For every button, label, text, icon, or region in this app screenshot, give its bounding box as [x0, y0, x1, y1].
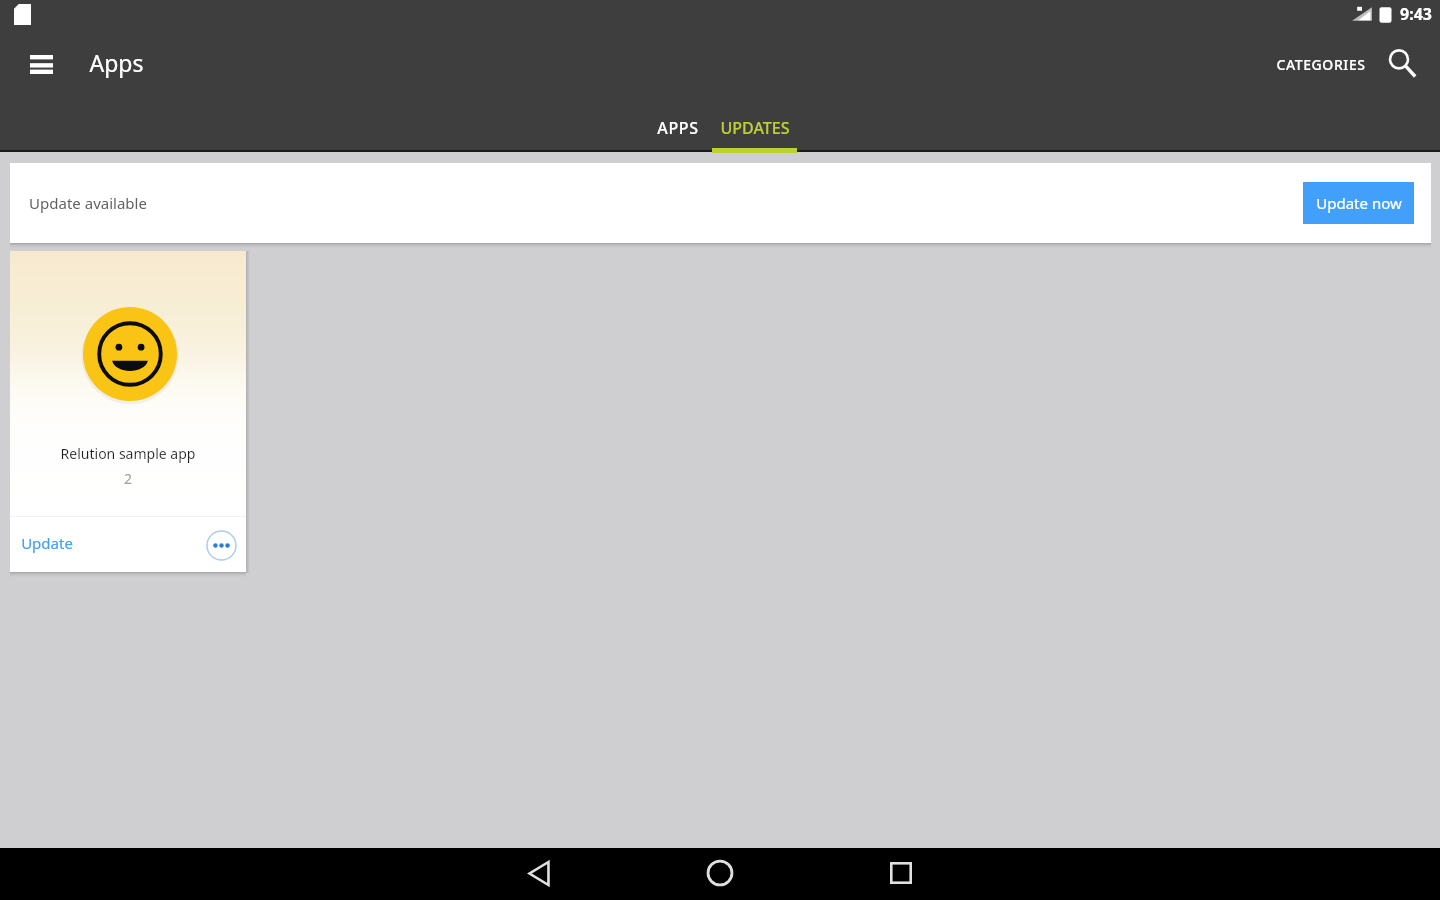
button[interactable]: Relution sample app: [10, 251, 246, 572]
button[interactable]: CATEGORIES: [1264, 42, 1378, 86]
staticText: UPDATES: [720, 117, 790, 139]
button[interactable]: APPS: [636, 106, 720, 150]
button[interactable]: More options: [201, 525, 241, 565]
button[interactable]: Home: [694, 847, 746, 899]
staticText: Update: [21, 533, 73, 553]
button[interactable]: UPDATES: [712, 106, 797, 150]
staticText: APPS: [657, 117, 699, 139]
button[interactable]: Search: [1378, 39, 1426, 87]
staticText: Relution sample app: [10, 444, 246, 463]
button[interactable]: Recent apps: [875, 847, 927, 899]
button[interactable]: Open navigation drawer: [17, 40, 65, 88]
staticText: Update available: [29, 193, 147, 213]
staticText: Apps: [89, 47, 144, 78]
button[interactable]: Update: [10, 525, 84, 561]
button[interactable]: Update now: [1303, 182, 1414, 224]
staticText: CATEGORIES: [1276, 55, 1366, 74]
button[interactable]: Back: [513, 847, 565, 899]
staticText: 2: [10, 469, 246, 488]
staticText: Update now: [1316, 193, 1402, 213]
staticText: 9:43: [1400, 3, 1432, 25]
